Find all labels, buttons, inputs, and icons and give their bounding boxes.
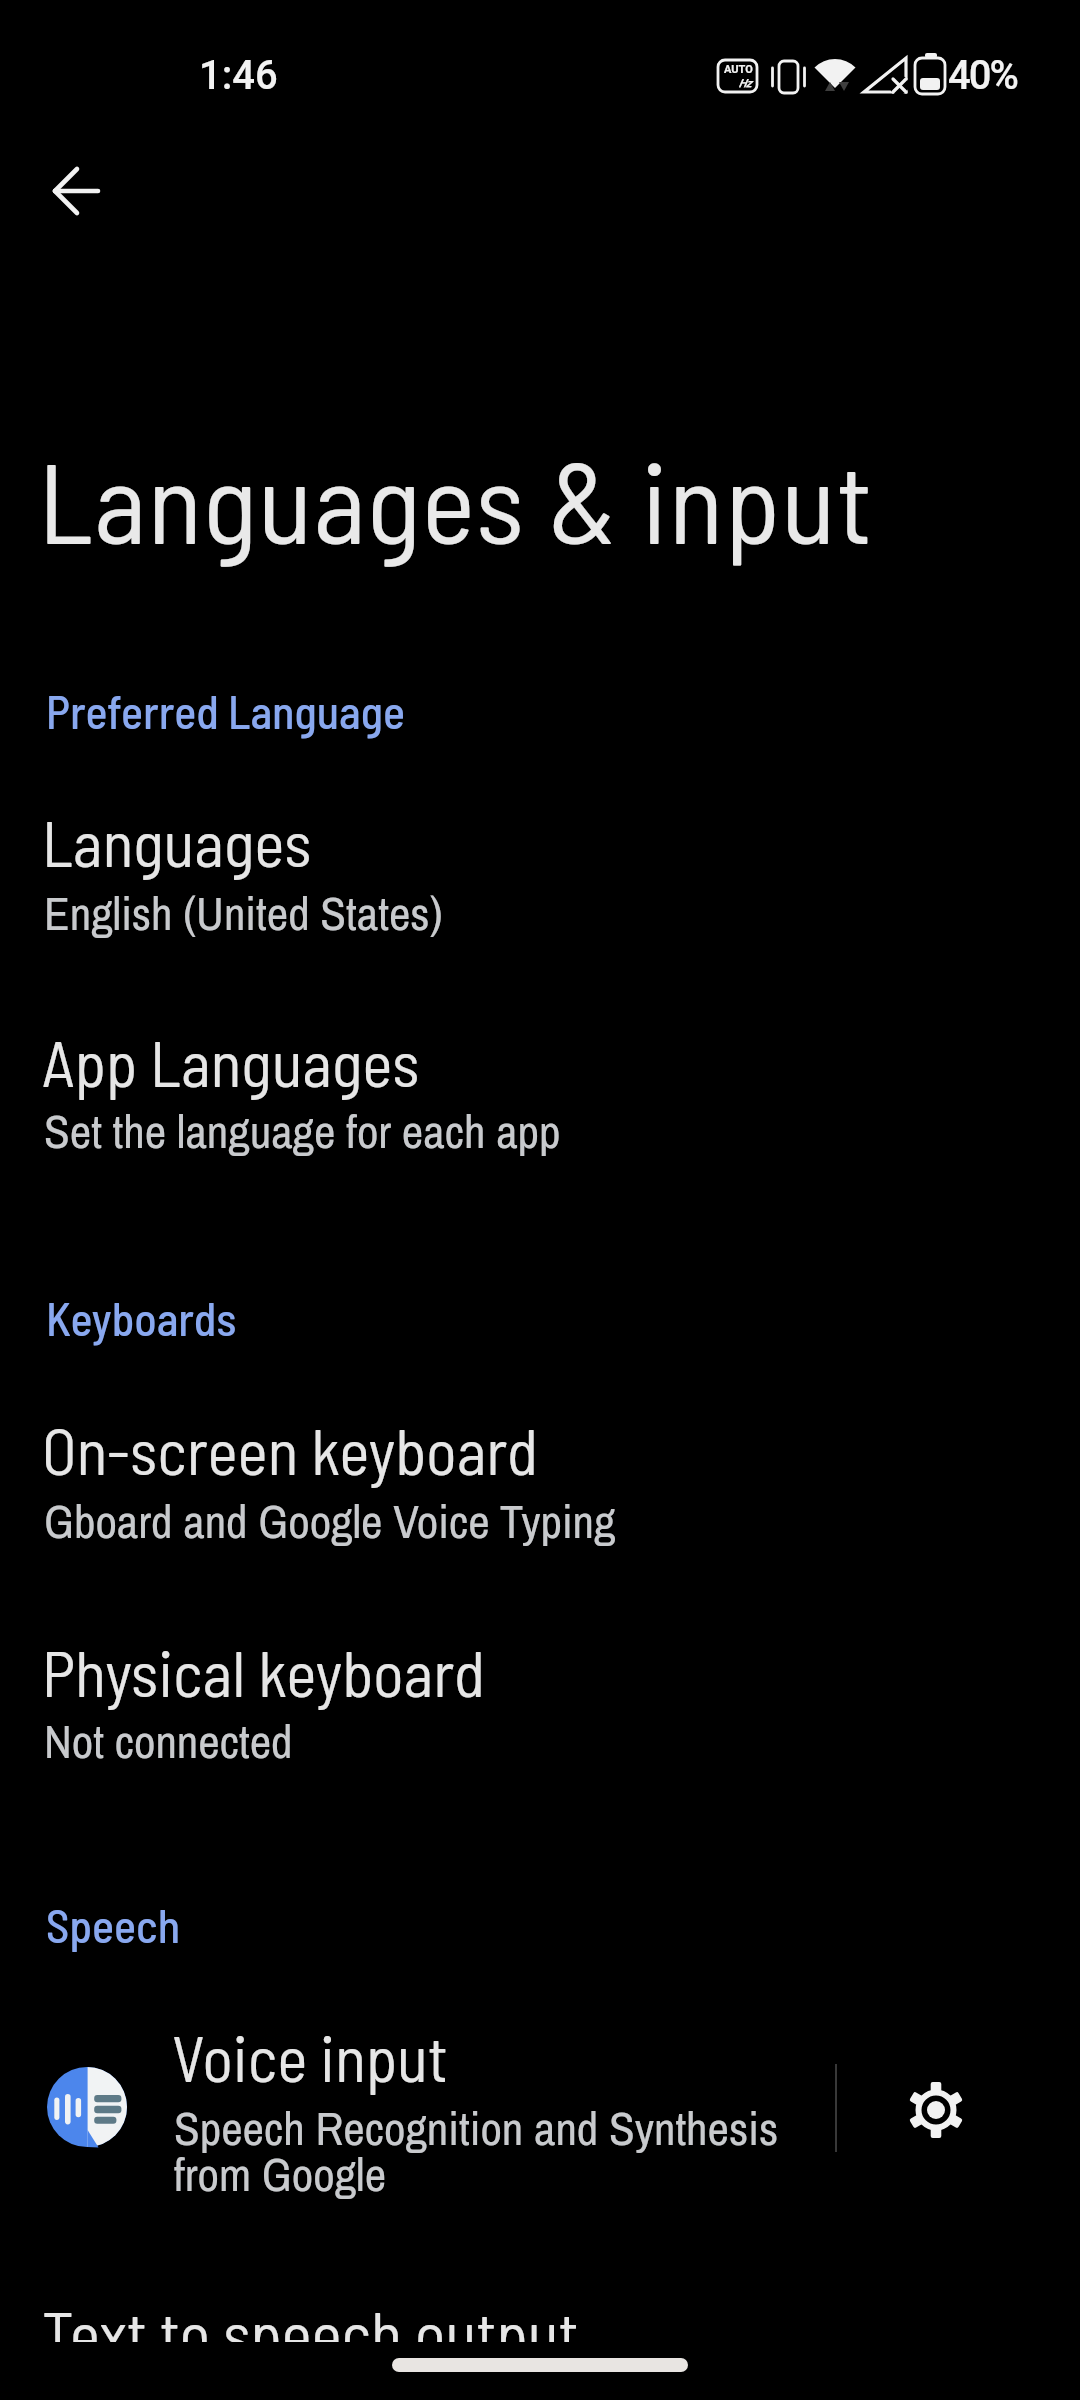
staticText: AUTO <box>724 63 753 76</box>
staticText: Hz <box>739 77 752 90</box>
button[interactable]: Physical keyboard <box>0 1610 1080 1790</box>
staticText: App Languages <box>42 1023 420 1100</box>
staticText: 1:46 <box>199 52 278 99</box>
staticText: Keyboards <box>46 1290 237 1345</box>
staticText: Languages <box>42 803 312 880</box>
staticText: English (United States) <box>44 881 443 944</box>
staticText: Preferred Language <box>46 683 405 738</box>
button[interactable]: App Languages <box>0 1000 1080 1180</box>
button[interactable] <box>908 2082 964 2138</box>
staticText: Speech <box>46 1897 181 1952</box>
button[interactable] <box>28 143 124 239</box>
staticText: Physical keyboard <box>42 1633 485 1710</box>
staticText: 40% <box>948 52 1017 99</box>
button[interactable]: Voice input <box>0 1990 1080 2230</box>
staticText: Text to speech output <box>42 2294 579 2371</box>
staticText: Set the language for each app <box>44 1099 561 1162</box>
button[interactable]: On-screen keyboard <box>0 1390 1080 1570</box>
staticText: Speech Recognition and Synthesis <box>174 2096 779 2159</box>
staticText: Gboard and Google Voice Typing <box>44 1489 616 1552</box>
button[interactable]: Languages <box>0 780 1080 960</box>
staticText: Languages & input <box>38 430 874 567</box>
staticText: Not connected <box>44 1709 293 1772</box>
staticText: On-screen keyboard <box>42 1411 538 1488</box>
staticText: Voice input <box>172 2018 448 2095</box>
staticText: from Google <box>174 2142 387 2205</box>
